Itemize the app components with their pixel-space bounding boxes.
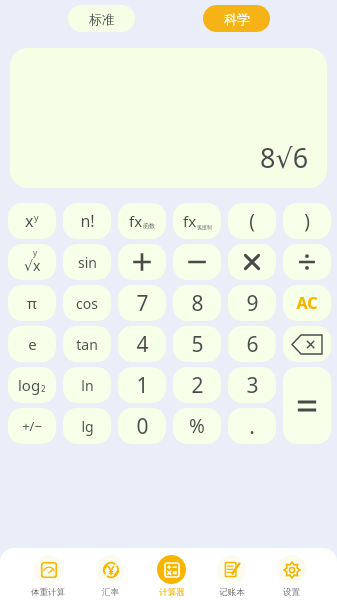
staticText: ( [249, 208, 255, 234]
button[interactable]: e [8, 326, 56, 362]
button[interactable]: sin [63, 244, 111, 280]
staticText: 科学 [224, 11, 250, 27]
staticText: 8 [191, 289, 204, 318]
staticText: ) [304, 208, 310, 234]
staticText: y [34, 211, 39, 223]
staticText: 6 [246, 330, 259, 359]
staticText: 设置 [283, 587, 300, 596]
staticText: AC [296, 292, 318, 314]
staticText: sin [78, 253, 97, 272]
staticText: 1 [136, 371, 149, 400]
button[interactable]: 记账本 [217, 551, 246, 600]
staticText: e [28, 334, 37, 354]
staticText: . [249, 412, 255, 441]
button[interactable]: ln [63, 367, 111, 403]
button[interactable]: log [8, 367, 56, 403]
button[interactable]: fx [173, 203, 221, 239]
staticText: 弧度制 [197, 224, 212, 230]
staticText: 8√6 [260, 139, 309, 176]
button[interactable]: 0 [118, 408, 166, 444]
button[interactable]: Multiply [228, 244, 276, 280]
button[interactable]: fx [118, 203, 166, 239]
staticText: 标准 [89, 11, 115, 27]
staticText: ln [81, 376, 94, 395]
staticText: π [27, 293, 37, 313]
staticText: 3 [246, 371, 259, 400]
button[interactable]: 3 [228, 367, 276, 403]
button[interactable]: 6 [228, 326, 276, 362]
button[interactable]: 标准 [68, 5, 135, 32]
button[interactable]: Backspace [283, 326, 331, 362]
button[interactable]: lg [63, 408, 111, 444]
button[interactable]: 2 [173, 367, 221, 403]
button[interactable]: ) [283, 203, 331, 239]
button[interactable]: AC [283, 285, 331, 321]
staticText: 9 [246, 289, 259, 318]
staticText: lg [81, 417, 94, 436]
button[interactable]: Divide [283, 244, 331, 280]
button[interactable]: 计算器 [157, 551, 186, 600]
button[interactable]: 汇率 [96, 551, 125, 600]
button[interactable]: 8 [173, 285, 221, 321]
staticText: fx [183, 211, 197, 231]
staticText: log [18, 375, 41, 395]
staticText: x [25, 210, 34, 232]
staticText: n! [80, 210, 95, 232]
button[interactable]: cos [63, 285, 111, 321]
staticText: fx [129, 211, 143, 231]
button[interactable]: 设置 [277, 551, 306, 600]
button[interactable]: ( [228, 203, 276, 239]
button[interactable]: 科学 [203, 5, 270, 32]
button[interactable]: 9 [228, 285, 276, 321]
button[interactable]: 体重计算 [31, 551, 65, 600]
button[interactable]: +/− [8, 408, 56, 444]
staticText: cos [76, 294, 98, 313]
staticText: 5 [191, 330, 204, 359]
staticText: 体重计算 [31, 587, 65, 596]
button[interactable]: 7 [118, 285, 166, 321]
staticText: 计算器 [159, 587, 185, 596]
staticText: 2 [191, 371, 204, 400]
button[interactable]: Equals [283, 367, 331, 444]
staticText: 7 [136, 289, 149, 318]
staticText: tan [76, 335, 98, 354]
button[interactable]: tan [63, 326, 111, 362]
staticText: 函数 [143, 222, 155, 230]
staticText: 汇率 [102, 587, 119, 596]
button[interactable]: Minus [173, 244, 221, 280]
staticText: y [33, 247, 38, 258]
staticText: 0 [136, 412, 149, 441]
staticText: 2 [41, 383, 46, 394]
button[interactable]: % [173, 408, 221, 444]
staticText: 记账本 [219, 587, 245, 596]
button[interactable]: 1 [118, 367, 166, 403]
staticText: √x [24, 256, 41, 275]
staticText: % [189, 413, 205, 439]
button[interactable]: 4 [118, 326, 166, 362]
button[interactable]: y [8, 244, 56, 280]
button[interactable]: n! [63, 203, 111, 239]
button[interactable]: 5 [173, 326, 221, 362]
button[interactable]: . [228, 408, 276, 444]
button[interactable]: π [8, 285, 56, 321]
button[interactable]: x [8, 203, 56, 239]
button[interactable]: Plus [118, 244, 166, 280]
staticText: +/− [22, 417, 42, 435]
staticText: 4 [136, 330, 149, 359]
